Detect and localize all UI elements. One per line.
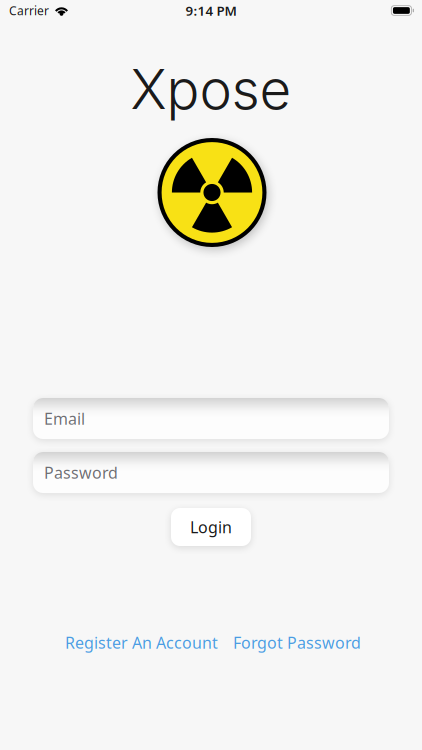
button[interactable]: Register An Account [65, 632, 218, 653]
staticText: Carrier [9, 2, 49, 18]
button[interactable]: Login [171, 508, 251, 546]
staticText: Password [44, 462, 118, 483]
staticText: 9:14 PM [185, 2, 236, 19]
staticText: Login [190, 516, 232, 538]
staticText: Register An Account [65, 632, 218, 653]
staticText: Email [44, 408, 85, 429]
staticText: Forgot Password [233, 632, 361, 653]
button[interactable]: Forgot Password [233, 632, 361, 653]
staticText: Xpose [130, 56, 291, 122]
